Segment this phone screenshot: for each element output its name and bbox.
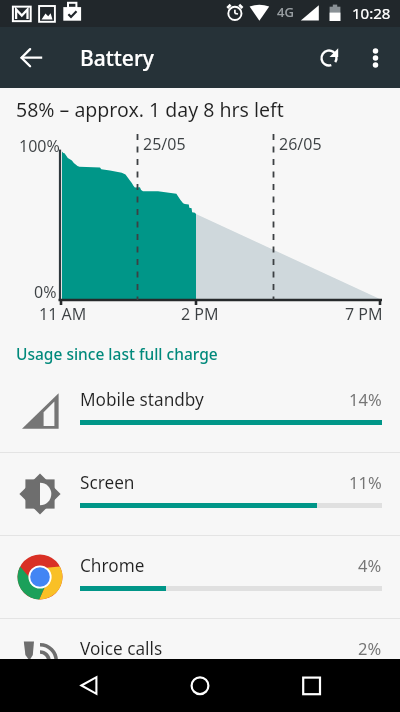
button[interactable]: More options <box>352 35 398 81</box>
button[interactable]: Home <box>171 659 227 712</box>
button[interactable]: Screen <box>0 453 400 535</box>
staticText: 25/05 <box>143 133 186 155</box>
staticText: Chrome <box>80 554 145 577</box>
staticText: 10:28 <box>352 3 391 23</box>
button[interactable]: Back <box>9 36 53 80</box>
staticText: 100% <box>19 135 60 157</box>
staticText: Battery <box>80 44 154 73</box>
button[interactable]: Voice calls <box>0 619 400 701</box>
button[interactable]: Recent apps <box>283 659 339 712</box>
staticText: Voice calls <box>80 637 163 660</box>
staticText: Screen <box>80 471 135 494</box>
button[interactable]: Back <box>61 659 117 712</box>
staticText: 11 AM <box>39 303 87 325</box>
staticText: 4% <box>358 554 382 576</box>
staticText: 11% <box>349 471 382 493</box>
staticText: 2 PM <box>181 303 219 325</box>
staticText: 14% <box>349 388 382 410</box>
staticText: Mobile standby <box>80 388 204 411</box>
staticText: 4G <box>277 3 294 21</box>
staticText: 0% <box>34 281 57 303</box>
staticText: 2% <box>358 637 382 659</box>
staticText: 26/05 <box>279 133 322 155</box>
staticText: 58% – approx. 1 day 8 hrs left <box>16 96 284 123</box>
staticText: Usage since last full charge <box>16 343 218 364</box>
button[interactable]: Mobile standby <box>0 370 400 452</box>
button[interactable]: Refresh <box>306 35 352 81</box>
staticText: 7 PM <box>345 303 383 325</box>
button[interactable]: Chrome <box>0 536 400 618</box>
